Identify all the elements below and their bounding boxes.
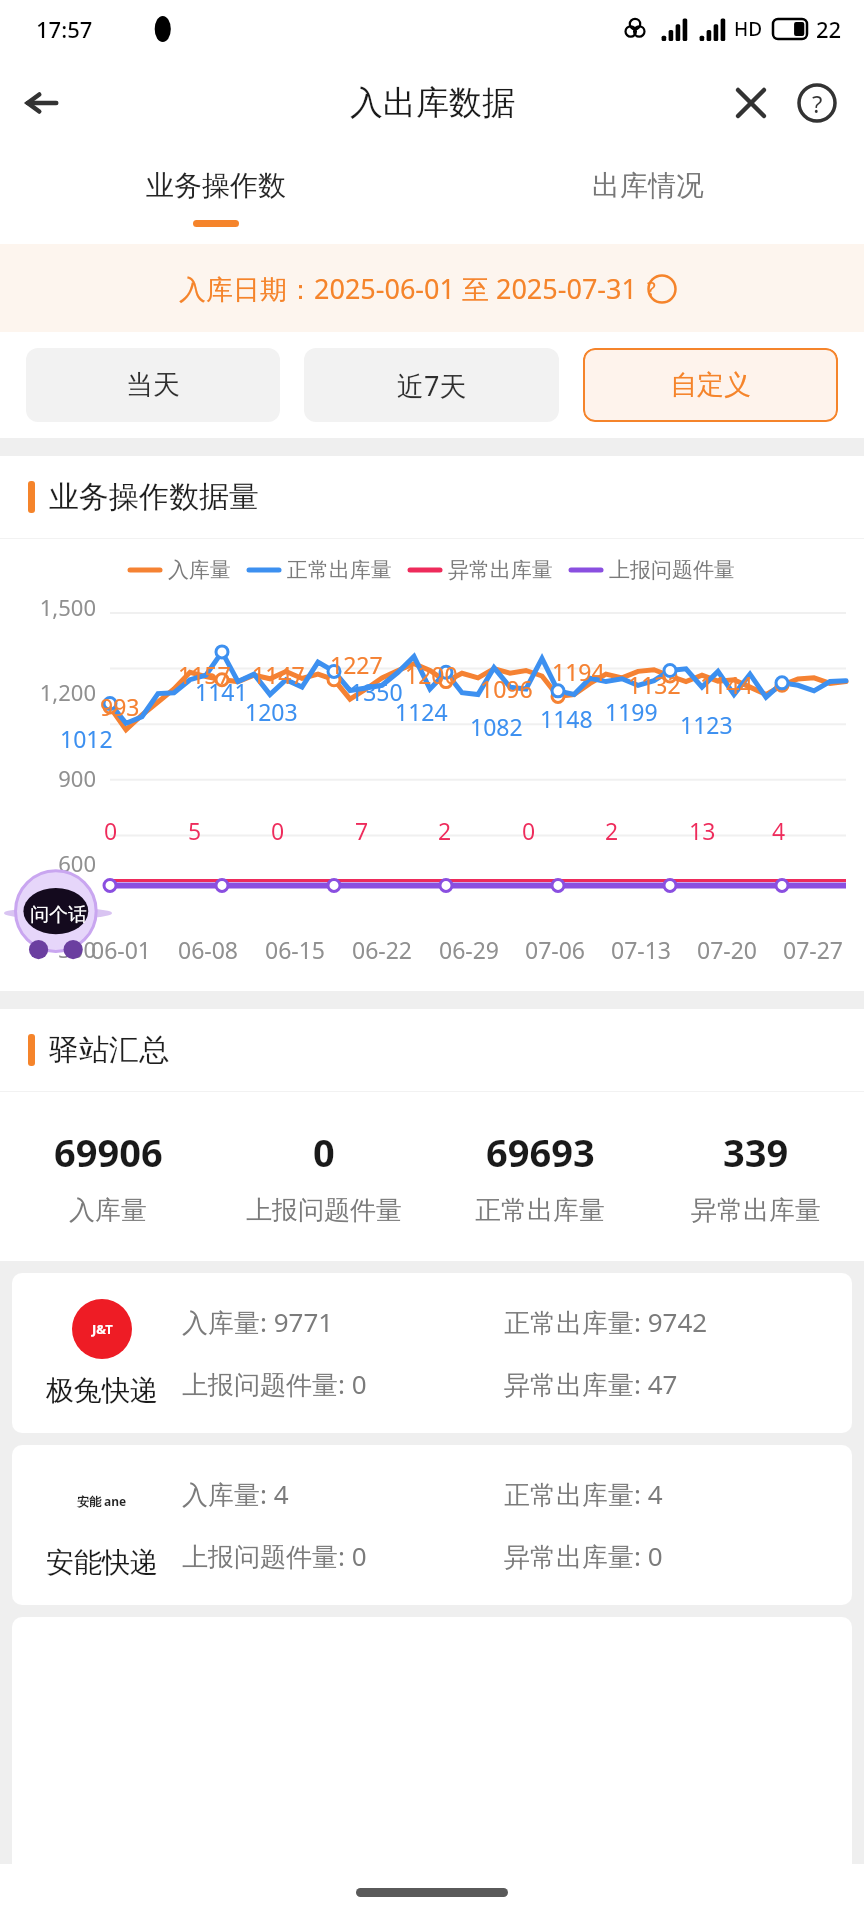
staticText: 06-01	[91, 934, 152, 965]
staticText: 1,500	[0, 592, 96, 622]
staticText: 异常出库量	[448, 557, 553, 583]
staticText: 0	[104, 815, 118, 846]
staticText: 07-27	[783, 934, 844, 965]
staticText: 2	[438, 815, 452, 846]
staticText: 06-15	[265, 934, 326, 965]
staticText: J&T	[92, 1320, 113, 1338]
staticText: 当天	[126, 368, 180, 402]
staticText: 0	[271, 815, 285, 846]
button[interactable]: J&T	[12, 1273, 852, 1433]
button[interactable]: Close	[724, 76, 778, 130]
button[interactable]: 当天	[26, 348, 280, 422]
staticText: 入库日期：2025-06-01 至 2025-07-31	[179, 270, 637, 307]
button[interactable]: Assistant	[4, 867, 112, 963]
staticText: 0	[313, 1126, 335, 1178]
staticText: 07-13	[611, 934, 672, 965]
staticText: 1200	[405, 659, 458, 690]
staticText: 1199	[605, 696, 658, 727]
button[interactable]: Help	[790, 76, 844, 130]
staticText: 06-08	[178, 934, 239, 965]
button[interactable]: 自定义	[583, 348, 838, 422]
staticText: 1124	[395, 696, 448, 727]
staticText: 安能快递	[46, 1545, 158, 1580]
staticText: 入库量: 9771	[182, 1304, 334, 1340]
staticText: 安能 ane	[77, 1493, 127, 1509]
staticText: 异常出库量: 47	[504, 1366, 678, 1402]
staticText: 极兔快递	[46, 1373, 158, 1408]
staticText: 1082	[470, 711, 523, 742]
staticText: 900	[0, 763, 96, 793]
staticText: 13	[689, 815, 716, 846]
staticText: 1148	[540, 703, 593, 734]
button[interactable]: 业务操作数	[0, 148, 432, 244]
staticText: 1203	[245, 696, 298, 727]
staticText: 上报问题件量: 0	[182, 1538, 367, 1574]
staticText: 600	[0, 848, 96, 878]
staticText: ?	[812, 87, 823, 120]
staticText: 1194	[552, 656, 605, 687]
staticText: 300	[0, 934, 96, 964]
staticText: 7	[355, 815, 369, 846]
staticText: 1350	[350, 676, 403, 707]
staticText: 06-22	[352, 934, 413, 965]
staticText: 1157	[178, 659, 231, 690]
staticText: 1227	[330, 649, 383, 680]
staticText: 1144	[700, 669, 753, 700]
staticText: 问个话	[30, 903, 87, 927]
staticText: 1,200	[0, 677, 96, 707]
staticText: 上报问题件量: 0	[182, 1366, 367, 1402]
staticText: 正常出库量: 9742	[504, 1304, 708, 1340]
staticText: 异常出库量: 0	[504, 1538, 663, 1574]
staticText: 5	[188, 815, 202, 846]
staticText: 1096	[480, 673, 533, 704]
staticText: 正常出库量	[287, 557, 392, 583]
button[interactable]: 入库日期：2025-06-01 至 2025-07-31	[0, 244, 864, 332]
staticText: 1132	[628, 669, 681, 700]
button[interactable]: 近7天	[304, 348, 559, 422]
staticText: 1147	[252, 659, 305, 690]
staticText: 入库量	[168, 557, 231, 583]
staticText: 69693	[486, 1126, 595, 1178]
button[interactable]: 出库情况	[432, 148, 864, 244]
staticText: 339	[723, 1126, 789, 1178]
staticText: 入库量	[69, 1194, 147, 1227]
staticText: 业务操作数	[146, 168, 286, 203]
staticText: 22	[816, 14, 842, 44]
staticText: 近7天	[397, 367, 467, 404]
staticText: 06-29	[439, 934, 500, 965]
staticText: 正常出库量	[475, 1194, 605, 1227]
staticText: ?	[647, 275, 656, 302]
staticText: 异常出库量	[691, 1194, 821, 1227]
button[interactable]: 安能 ane	[12, 1445, 852, 1605]
staticText: 0	[522, 815, 536, 846]
staticText: 4	[772, 815, 786, 846]
staticText: 上报问题件量	[246, 1194, 402, 1227]
staticText: 69906	[54, 1126, 163, 1178]
staticText: 入库量: 4	[182, 1476, 289, 1512]
staticText: 出库情况	[592, 168, 704, 203]
button[interactable]: Back	[14, 75, 70, 131]
staticText: 驿站汇总	[49, 1031, 169, 1069]
staticText: 2	[605, 815, 619, 846]
staticText: 1141	[195, 676, 248, 707]
staticText: HD	[734, 16, 763, 42]
staticText: 自定义	[670, 368, 751, 402]
staticText: 07-06	[525, 934, 586, 965]
staticText: 上报问题件量	[609, 557, 735, 583]
staticText: 17:57	[36, 14, 93, 44]
staticText: 993	[100, 691, 140, 722]
staticText: 业务操作数据量	[49, 478, 259, 516]
staticText: 07-20	[697, 934, 758, 965]
staticText: 正常出库量: 4	[504, 1476, 663, 1512]
staticText: 1123	[680, 709, 733, 740]
staticText: 入出库数据	[350, 82, 515, 124]
staticText: 1012	[60, 723, 113, 754]
